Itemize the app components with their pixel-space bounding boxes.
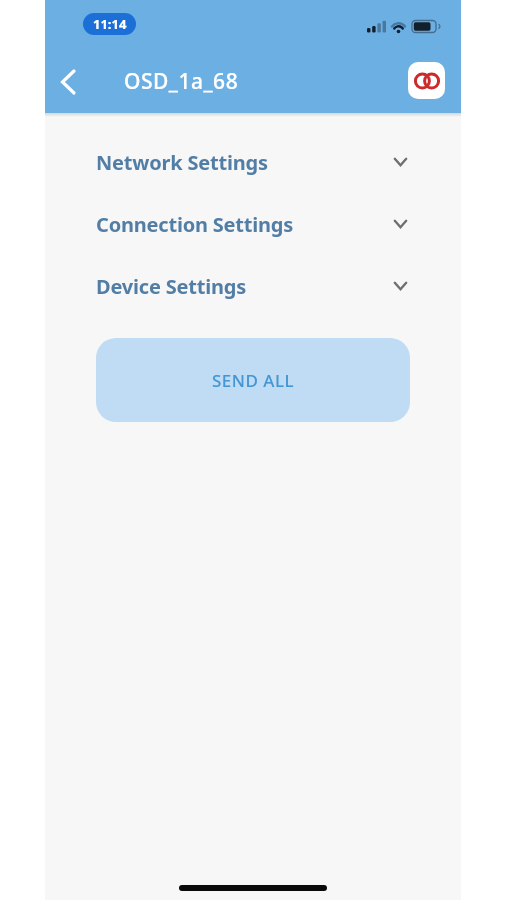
button[interactable]: SEND ALL — [96, 338, 410, 422]
button[interactable]: 11:14 — [83, 13, 136, 35]
staticText: SEND ALL — [212, 369, 295, 392]
button[interactable]: Connection Settings — [45, 193, 461, 255]
staticText: Network Settings — [96, 149, 268, 176]
staticText: Device Settings — [96, 273, 247, 300]
button[interactable]: Device Settings — [45, 255, 461, 317]
button[interactable]: Network Settings — [45, 131, 461, 193]
button[interactable] — [408, 62, 445, 99]
button[interactable] — [53, 67, 83, 97]
staticText: 11:14 — [93, 15, 127, 33]
staticText: Connection Settings — [96, 211, 294, 238]
staticText: OSD_1a_68 — [124, 67, 239, 96]
